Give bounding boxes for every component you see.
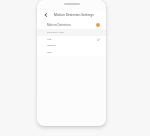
button[interactable]: Medium: [37, 42, 106, 49]
staticText: Low: [47, 38, 52, 41]
button[interactable]: Back: [42, 11, 49, 18]
button[interactable]: Motion Detection: [37, 21, 106, 29]
staticText: Motion Detection Settings: [54, 13, 94, 17]
staticText: High: [47, 51, 52, 54]
staticText: Motion Detection: [47, 23, 71, 27]
button[interactable]: Low: [37, 36, 106, 43]
staticText: Sensitivity Level: [47, 31, 64, 34]
staticText: Medium: [47, 44, 56, 47]
button[interactable]: High: [37, 49, 106, 56]
